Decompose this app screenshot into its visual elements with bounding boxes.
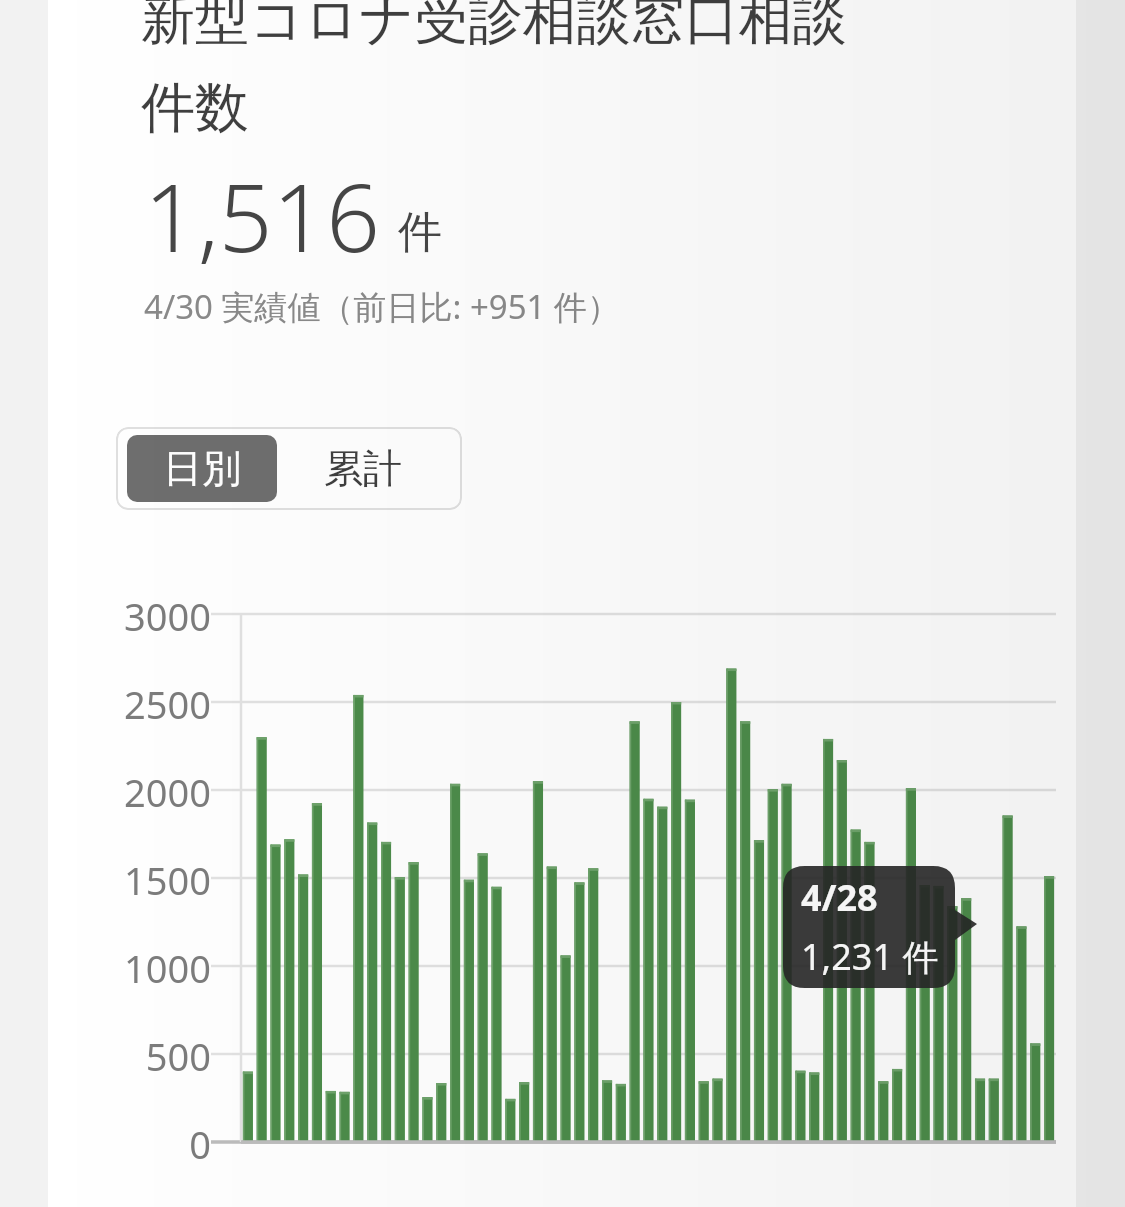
staticText: 新型コロナ受診相談窓口相談 件数	[141, 0, 847, 138]
staticText: 日別	[163, 444, 241, 493]
staticText: 1,231 件	[801, 932, 939, 981]
staticText: 3000	[48, 590, 211, 642]
staticText: 0	[48, 1118, 211, 1170]
staticText: 2500	[48, 678, 211, 730]
button[interactable]: 日別	[127, 435, 277, 502]
staticText: 2000	[48, 766, 211, 818]
staticText: 累計	[324, 444, 402, 493]
button[interactable]: 累計	[277, 435, 449, 502]
staticText: 1000	[48, 942, 211, 994]
staticText: 4/30 実績値（前日比: +951 件）	[144, 284, 620, 329]
staticText: 4/28	[801, 873, 878, 922]
staticText: 件	[398, 205, 442, 260]
staticText: 1500	[48, 854, 211, 906]
staticText: 500	[48, 1030, 211, 1082]
other: 4/28 1,231 件	[783, 866, 955, 988]
staticText: 1,516	[144, 152, 380, 272]
